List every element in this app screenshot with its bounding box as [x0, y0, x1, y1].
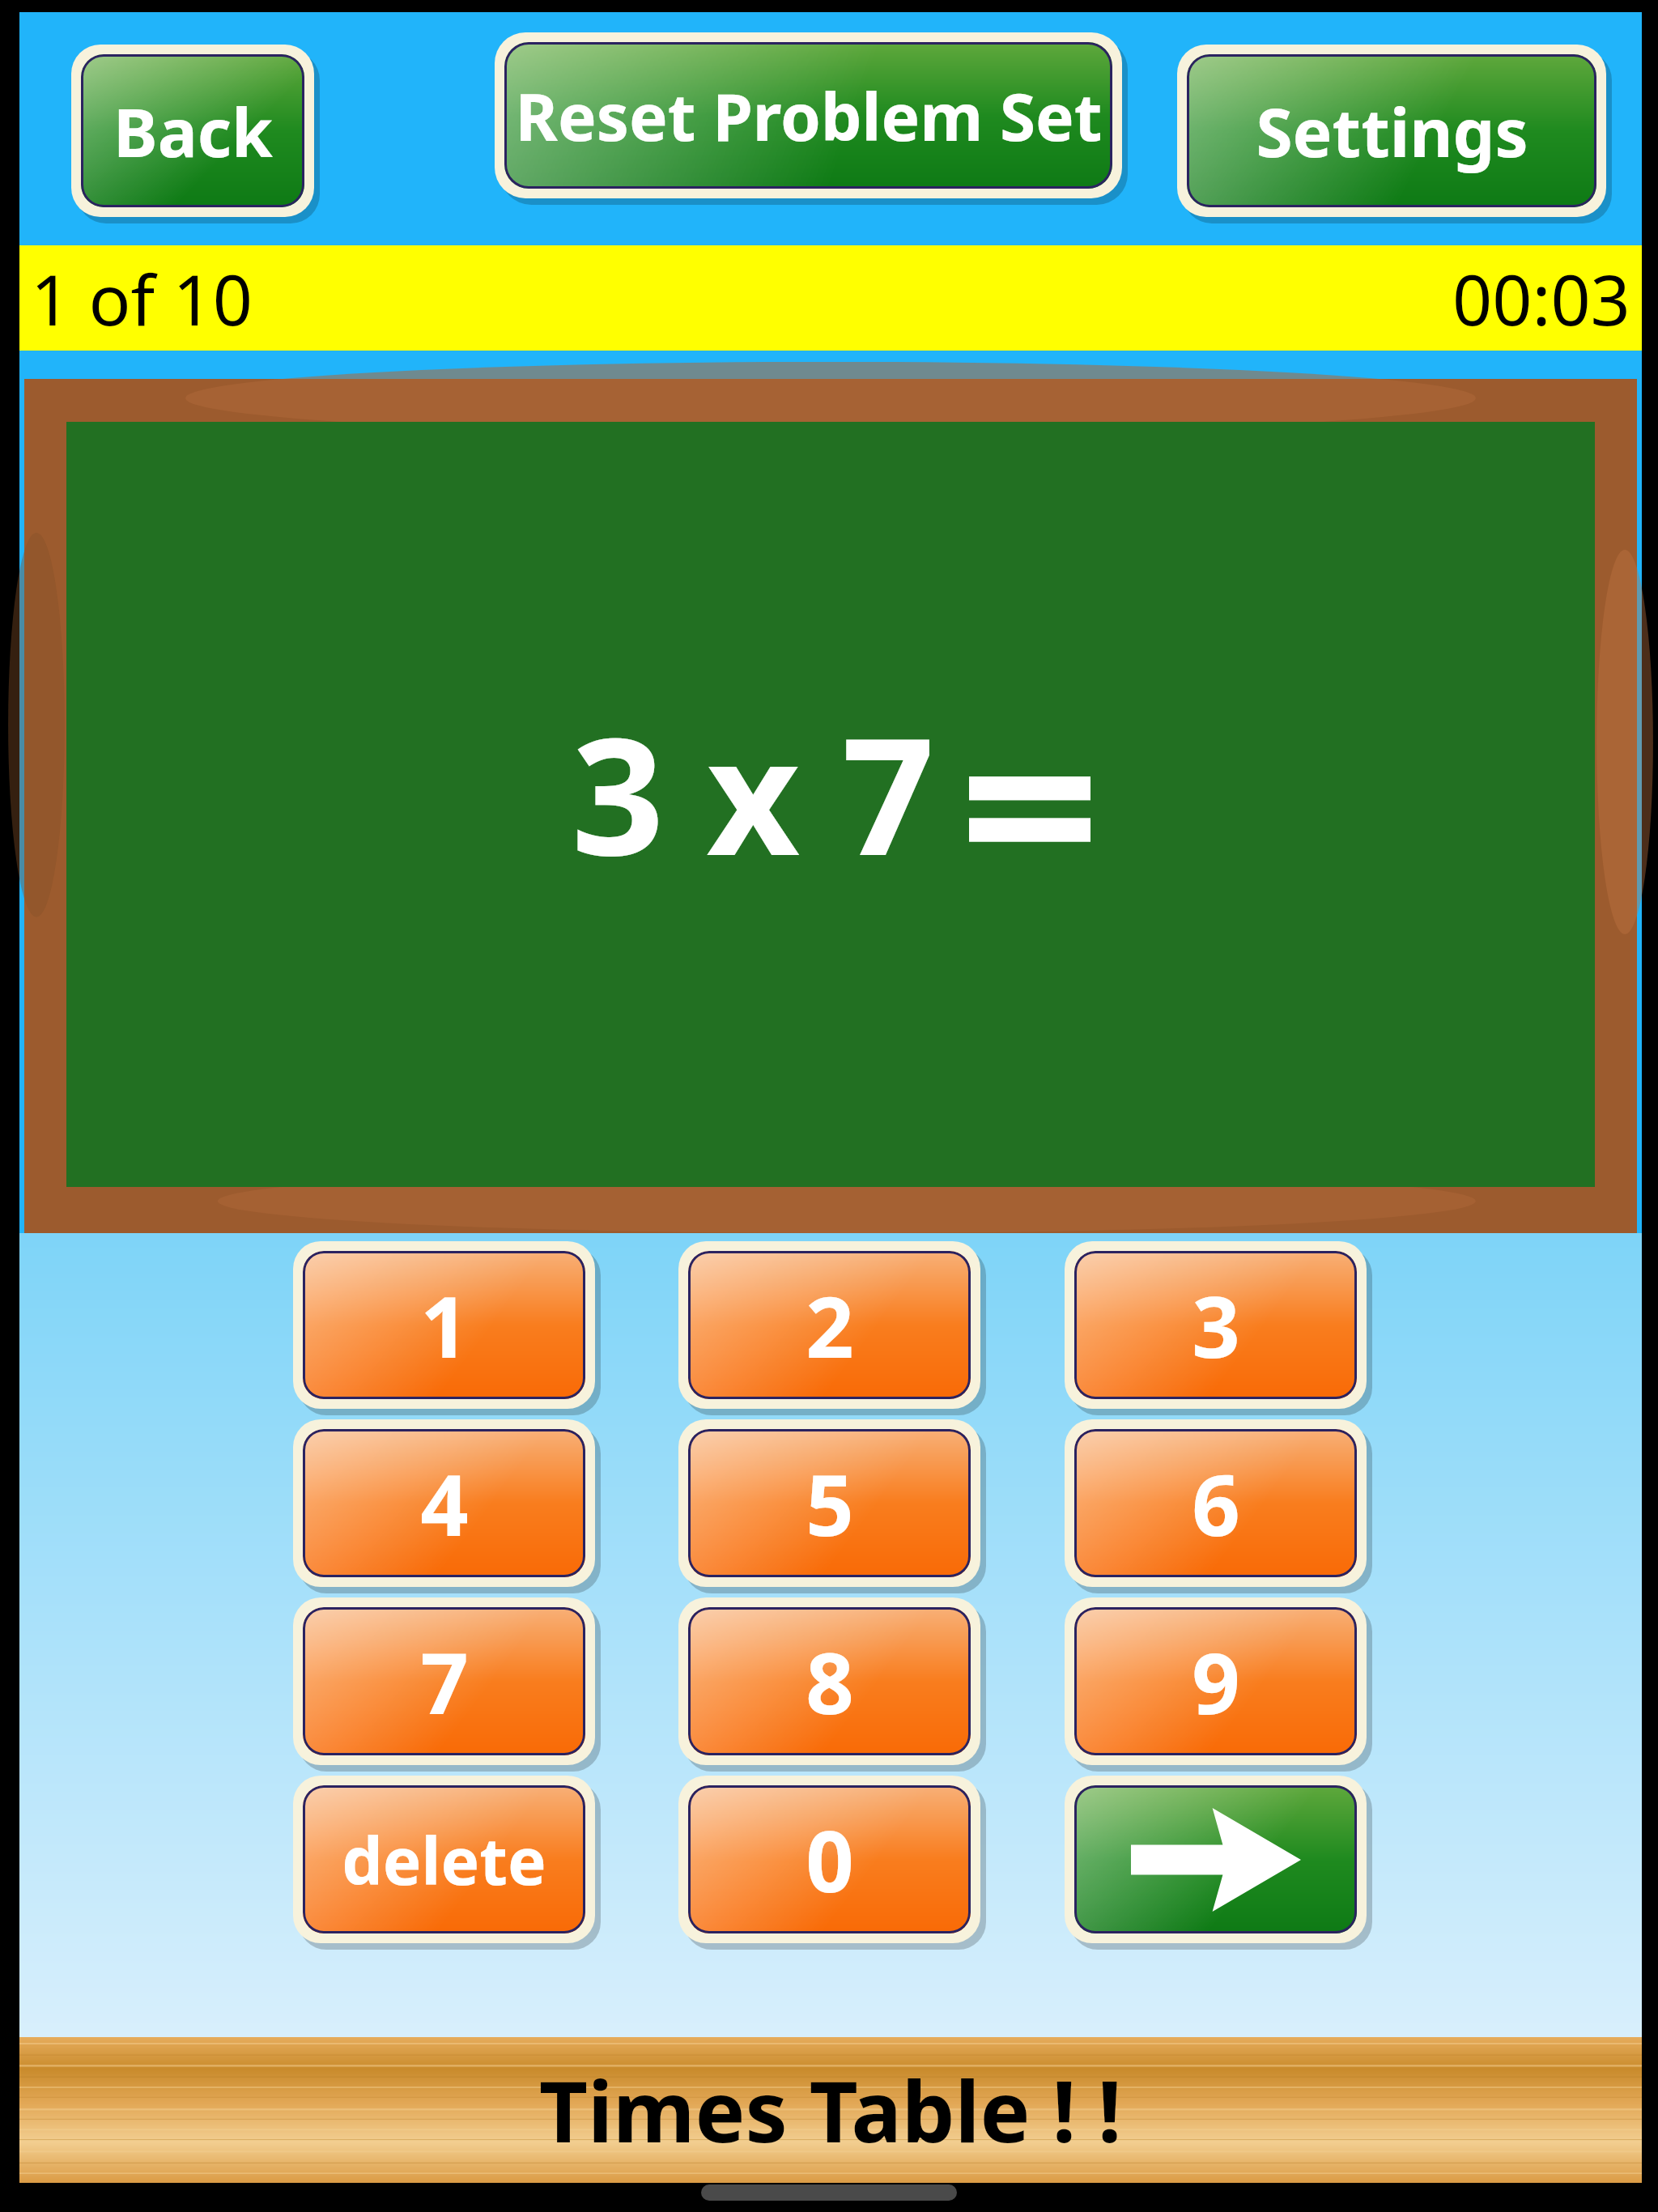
staticText: 9 — [1192, 1624, 1240, 1739]
staticText: 3 — [1192, 1268, 1240, 1383]
staticText: 0 — [806, 1802, 854, 1917]
button[interactable]: Reset Problem Set — [495, 32, 1122, 198]
button[interactable]: Back — [71, 45, 314, 217]
staticText: Reset Problem Set — [515, 71, 1103, 160]
staticText: 2 — [806, 1268, 854, 1383]
staticText: Back — [113, 86, 273, 177]
button[interactable]: Next problem — [1065, 1776, 1367, 1943]
button[interactable]: 3 — [1065, 1241, 1367, 1409]
button[interactable]: delete — [293, 1776, 595, 1943]
button[interactable]: 2 — [678, 1241, 980, 1409]
staticText: 6 — [1192, 1446, 1240, 1561]
staticText: 1 of 10 — [31, 251, 253, 346]
staticText: 7 — [420, 1624, 469, 1739]
button[interactable]: 5 — [678, 1419, 980, 1587]
staticText: Settings — [1256, 86, 1528, 177]
staticText: 1 — [420, 1268, 469, 1383]
button[interactable]: 1 — [293, 1241, 595, 1409]
staticText: 5 — [806, 1446, 854, 1561]
staticText: 4 — [420, 1446, 469, 1561]
button[interactable]: 8 — [678, 1597, 980, 1765]
button[interactable]: 0 — [678, 1776, 980, 1943]
staticText: 8 — [806, 1624, 854, 1739]
button[interactable]: Settings — [1177, 45, 1606, 217]
staticText: 3 x 7 — [572, 682, 935, 902]
button[interactable]: 4 — [293, 1419, 595, 1587]
button[interactable]: 9 — [1065, 1597, 1367, 1765]
staticText: delete — [342, 1815, 546, 1904]
button[interactable]: 6 — [1065, 1419, 1367, 1587]
staticText: 00:03 — [1452, 251, 1630, 346]
staticText: Times Table ! ! — [539, 2052, 1122, 2167]
button[interactable]: 7 — [293, 1597, 595, 1765]
